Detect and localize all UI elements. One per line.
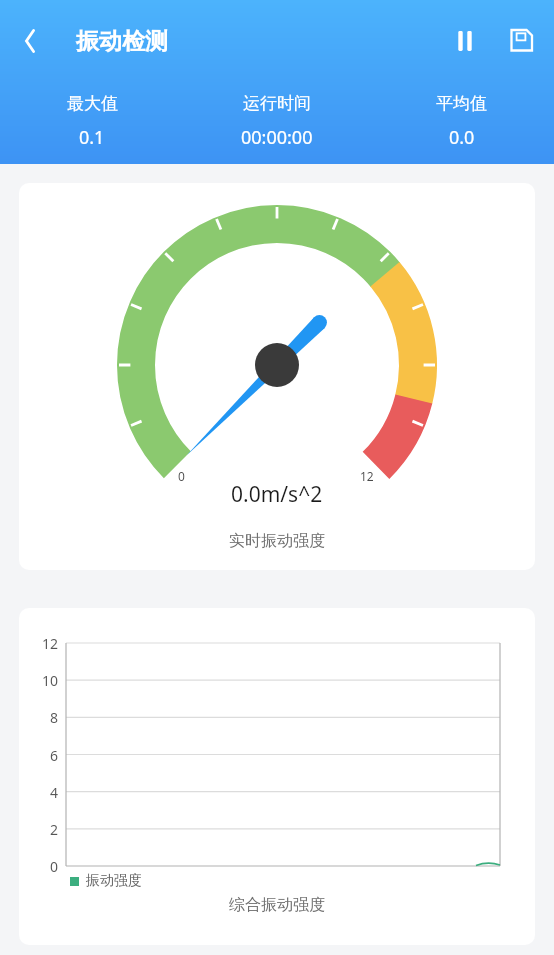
staticText: 8 (50, 708, 59, 727)
staticText: 实时振动强度 (229, 531, 325, 551)
staticText: 4 (50, 783, 59, 802)
button[interactable]: Pause (442, 18, 488, 64)
staticText: 0.0 (449, 125, 475, 150)
staticText: 平均值 (436, 93, 487, 114)
staticText: 2 (50, 820, 59, 839)
staticText: 运行时间 (243, 93, 311, 114)
staticText: 振动检测 (76, 27, 168, 56)
staticText: 最大值 (67, 93, 118, 114)
staticText: 00:00:00 (241, 125, 313, 150)
staticText: 0.1 (79, 125, 105, 150)
staticText: 6 (50, 746, 59, 765)
button[interactable]: Save (498, 18, 544, 64)
staticText: 12 (42, 634, 59, 653)
staticText: 振动强度 (86, 872, 142, 890)
staticText: 0.0m/s^2 (231, 480, 323, 509)
staticText: 12 (360, 468, 374, 484)
staticText: 0 (178, 468, 185, 484)
staticText: 10 (42, 671, 59, 690)
button[interactable]: Back (6, 17, 54, 65)
staticText: 0 (50, 857, 59, 876)
staticText: 综合振动强度 (229, 895, 325, 915)
